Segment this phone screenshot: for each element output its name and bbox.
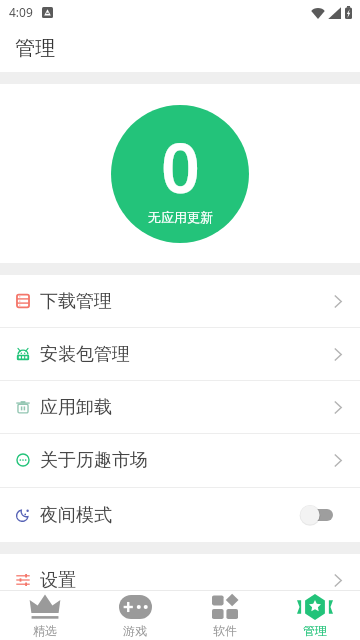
staticText: 0 [161, 120, 200, 213]
button[interactable]: 游戏 [90, 591, 180, 640]
staticText: 应用卸载 [40, 396, 112, 419]
button[interactable]: 设置 [0, 554, 360, 606]
staticText: 设置 [40, 569, 76, 592]
button[interactable]: 管理 [270, 591, 360, 640]
staticText: 管理 [15, 36, 55, 61]
button[interactable]: 应用卸载 [0, 381, 360, 433]
button[interactable]: 精选 [0, 591, 90, 640]
button[interactable]: 下载管理 [0, 275, 360, 327]
button[interactable]: 夜间模式开关 [300, 505, 333, 525]
staticText: 4:09 [9, 4, 33, 20]
staticText: 下载管理 [40, 290, 112, 313]
staticText: 无应用更新 [148, 209, 213, 225]
button[interactable]: 0 [111, 105, 249, 243]
staticText: 游戏 [123, 623, 147, 638]
staticText: 软件 [213, 623, 237, 638]
button[interactable]: 软件 [180, 591, 270, 640]
button[interactable]: 安装包管理 [0, 328, 360, 380]
staticText: 关于历趣市场 [40, 449, 148, 472]
button[interactable]: 关于历趣市场 [0, 434, 360, 487]
staticText: 夜间模式 [40, 504, 112, 527]
staticText: 安装包管理 [40, 343, 130, 366]
staticText: 管理 [303, 623, 327, 638]
staticText: 精选 [33, 623, 57, 638]
button[interactable]: 夜间模式 [0, 488, 360, 542]
